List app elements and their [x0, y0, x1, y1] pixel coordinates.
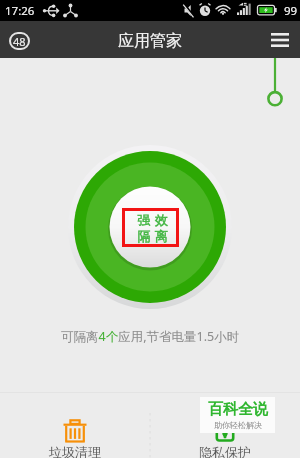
button[interactable]: 垃圾清理	[0, 393, 150, 458]
staticText: 应用管家	[118, 31, 182, 51]
staticText: 99	[284, 3, 298, 19]
staticText: 隔离	[135, 228, 170, 244]
staticText: 17:26	[5, 3, 35, 19]
button[interactable]: 隐私保护	[150, 393, 300, 458]
button[interactable]: 百科全说	[200, 397, 275, 433]
staticText: 百科全说	[208, 400, 268, 419]
staticText: 隐私保护	[199, 444, 251, 458]
button[interactable]: 48	[9, 32, 30, 50]
staticText: 垃圾清理	[49, 444, 101, 458]
button[interactable]: 强效	[68, 145, 232, 309]
staticText: 48	[13, 34, 26, 49]
staticText: 助你轻松解决	[214, 420, 262, 430]
staticText: 强效	[135, 212, 170, 228]
button[interactable]: Menu	[260, 21, 300, 58]
staticText: 可隔离4个应用,节省电量1.5小时	[61, 328, 240, 345]
